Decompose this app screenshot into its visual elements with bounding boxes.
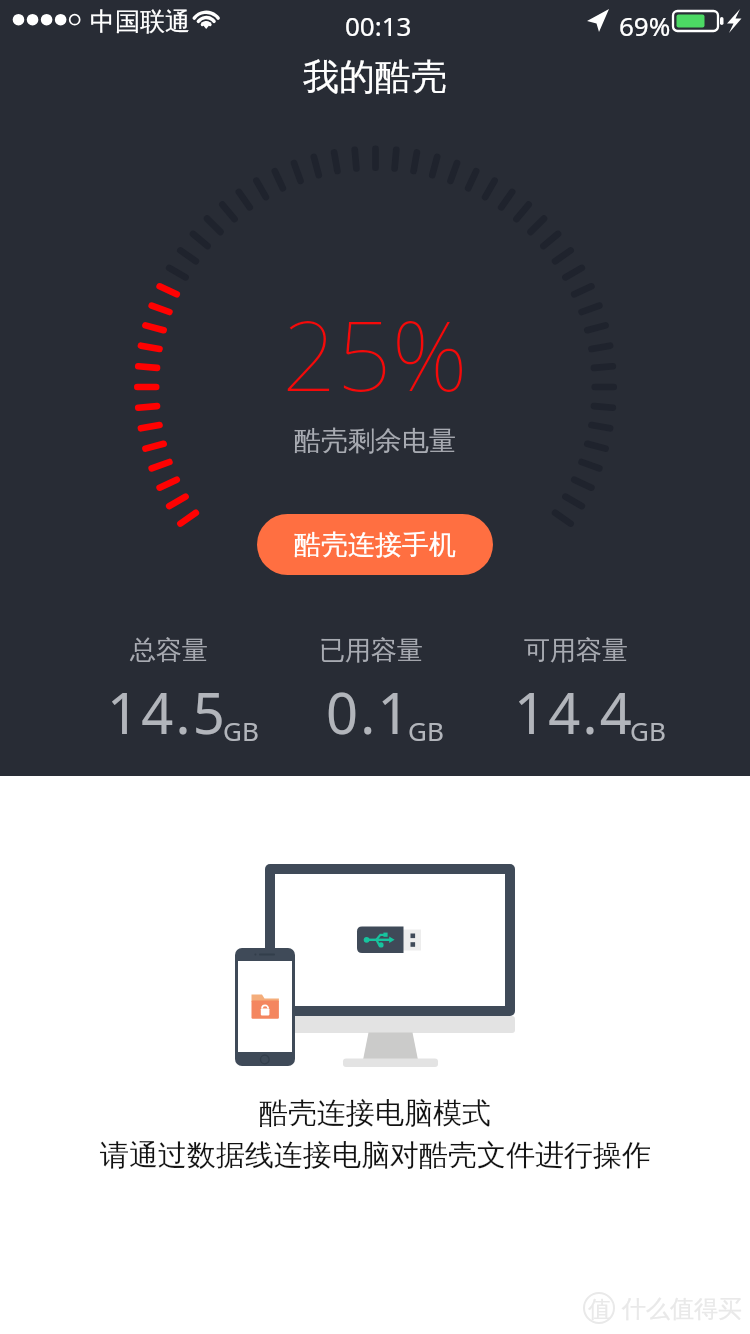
staticText: GB bbox=[223, 713, 259, 748]
staticText: 可用容量 bbox=[524, 634, 628, 667]
staticText: 酷壳剩余电量 bbox=[294, 424, 456, 458]
staticText: 什么值得买 bbox=[622, 1294, 742, 1324]
staticText: 已用容量 bbox=[319, 634, 423, 667]
staticText: GB bbox=[408, 713, 444, 748]
staticText: 14.4 bbox=[514, 674, 634, 750]
staticText: 00:13 bbox=[345, 8, 412, 43]
staticText: 14.5 bbox=[107, 674, 227, 750]
staticText: 中国联通 bbox=[90, 6, 190, 37]
staticText: 我的酷壳 bbox=[303, 54, 447, 99]
staticText: 69% bbox=[619, 8, 671, 43]
staticText: 总容量 bbox=[130, 634, 208, 667]
staticText: 酷壳连接手机 bbox=[294, 528, 456, 562]
button[interactable]: 酷壳连接手机 bbox=[257, 514, 493, 575]
other: Computer connection illustration bbox=[225, 855, 530, 1075]
staticText: 请通过数据线连接电脑对酷壳文件进行操作 bbox=[100, 1137, 651, 1174]
staticText: GB bbox=[630, 713, 666, 748]
staticText: 值 bbox=[588, 1295, 611, 1324]
staticText: 酷壳连接电脑模式 bbox=[259, 1095, 491, 1132]
staticText: 25% bbox=[282, 288, 468, 419]
staticText: 0.1 bbox=[326, 674, 412, 750]
